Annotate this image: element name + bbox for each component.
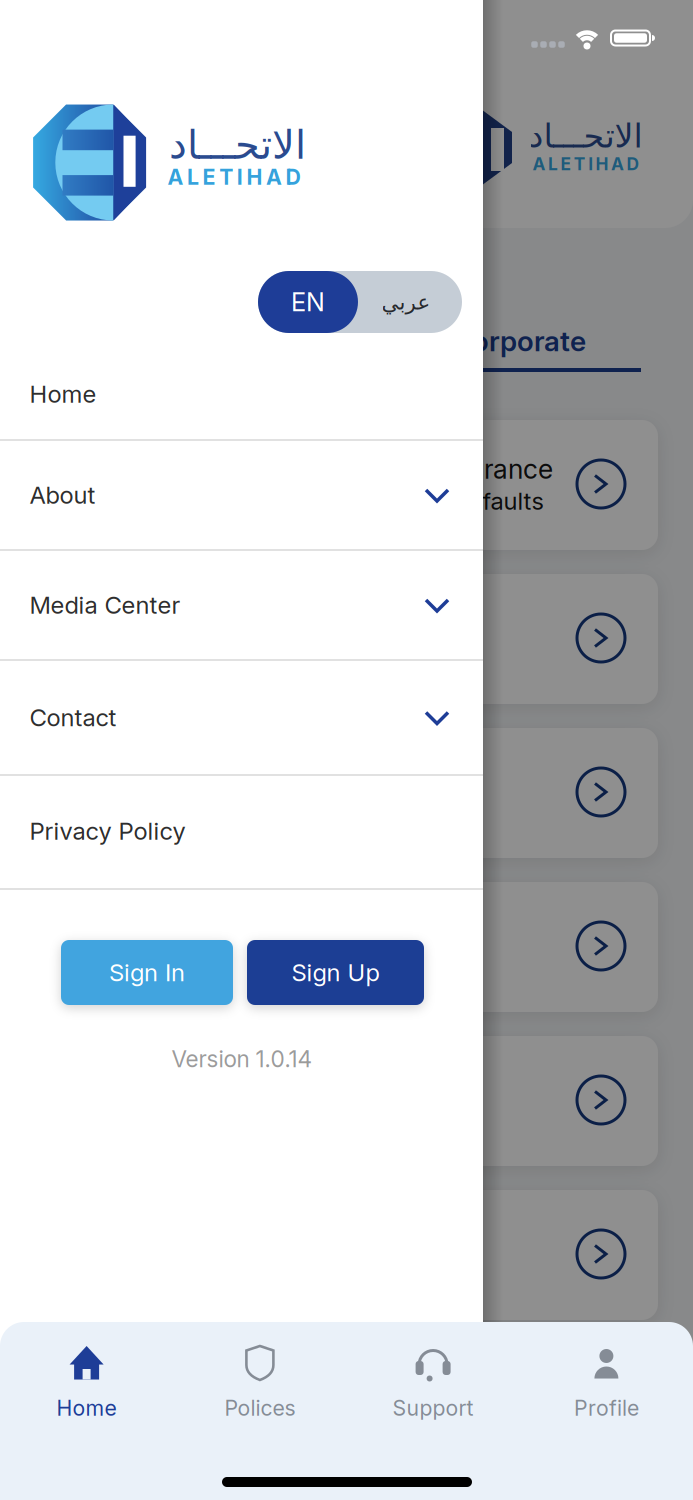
button[interactable]: Media Center xyxy=(0,550,483,660)
button[interactable]: EN xyxy=(258,271,358,333)
button[interactable]: Contact xyxy=(0,660,483,775)
staticText: H xyxy=(596,154,609,174)
staticText: Profile xyxy=(574,1395,639,1421)
button[interactable]: Sign Up xyxy=(247,940,424,1005)
button[interactable]: Privacy Policy xyxy=(0,774,483,888)
staticText: Sign Up xyxy=(291,958,379,987)
staticText: defaults xyxy=(454,487,543,515)
staticText: I xyxy=(588,154,593,174)
staticText: Insurance xyxy=(433,453,553,485)
staticText: I xyxy=(237,164,243,190)
staticText: A xyxy=(167,164,183,190)
staticText: EN xyxy=(291,287,325,317)
button[interactable]: About xyxy=(0,440,483,550)
staticText: الاتحـــاد xyxy=(528,117,642,155)
staticText: L xyxy=(548,154,558,174)
staticText: Support xyxy=(393,1395,474,1421)
button[interactable]: Sign In xyxy=(61,940,233,1005)
staticText: Home xyxy=(29,380,96,408)
button[interactable]: Polices xyxy=(173,1322,346,1462)
staticText: D xyxy=(286,164,301,190)
button[interactable]: Home xyxy=(0,344,483,444)
staticText: الاتحـــاد xyxy=(168,122,305,168)
staticText: T xyxy=(574,154,586,174)
staticText: Version 1.0.14 xyxy=(171,1046,312,1072)
staticText: T xyxy=(219,164,233,190)
staticText: About xyxy=(29,481,95,509)
staticText: A xyxy=(611,154,624,174)
staticText: D xyxy=(626,154,639,174)
staticText: Media Center xyxy=(29,591,180,619)
staticText: E xyxy=(203,164,216,190)
staticText: عربي xyxy=(381,290,430,314)
staticText: Sign In xyxy=(109,958,185,987)
staticText: Home xyxy=(57,1395,117,1421)
staticText: Polices xyxy=(224,1395,295,1421)
staticText: Contact xyxy=(29,703,116,732)
staticText: L xyxy=(187,164,199,190)
button[interactable]: Home xyxy=(0,1322,173,1462)
button[interactable]: Profile xyxy=(520,1322,693,1462)
button[interactable]: Support xyxy=(347,1322,520,1462)
staticText: Privacy Policy xyxy=(29,817,185,845)
staticText: A xyxy=(533,154,546,174)
staticText: H xyxy=(246,164,262,190)
staticText: A xyxy=(266,164,282,190)
button[interactable]: عربي xyxy=(258,271,462,333)
staticText: E xyxy=(560,154,571,174)
staticText: Corporate xyxy=(452,324,586,357)
